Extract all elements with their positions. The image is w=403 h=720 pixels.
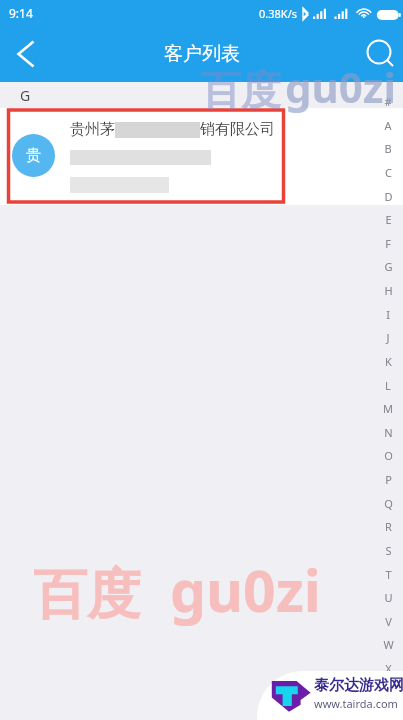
button[interactable]: O (379, 444, 397, 466)
staticText: F (385, 236, 391, 251)
button[interactable]: S (379, 539, 397, 561)
button[interactable]: G (379, 255, 397, 277)
staticText: 泰尔达游戏网 (314, 676, 403, 695)
staticText: # (384, 94, 392, 109)
staticText: B (384, 141, 392, 156)
staticText: N (384, 425, 393, 440)
button[interactable]: C (379, 161, 397, 183)
button[interactable]: D (379, 185, 397, 207)
staticText: 百度 (33, 561, 141, 629)
staticText: L (385, 378, 391, 393)
button[interactable]: B (379, 137, 397, 159)
staticText: E (385, 212, 392, 227)
staticText: gu0zi (170, 551, 321, 629)
staticText: 贵州茅 (70, 120, 115, 139)
staticText: G (384, 259, 393, 274)
staticText: V (385, 614, 392, 629)
staticText: 9:14 (9, 5, 33, 21)
staticText: H (384, 283, 393, 298)
staticText: 客户列表 (164, 42, 240, 66)
staticText: I (386, 307, 390, 322)
staticText: X (385, 661, 392, 676)
staticText: 百度 (201, 65, 281, 115)
button[interactable]: Back (0, 28, 52, 80)
staticText: gu0zi (285, 58, 397, 115)
staticText: 销有限公司 (200, 120, 275, 139)
button[interactable]: N (379, 421, 397, 443)
button[interactable]: J (379, 326, 397, 348)
button[interactable]: W (379, 633, 397, 655)
staticText: D (384, 189, 393, 204)
button[interactable]: R (379, 515, 397, 537)
staticText: W (383, 637, 394, 652)
button[interactable]: E (379, 208, 397, 230)
staticText: 贵 (26, 146, 41, 165)
button[interactable]: X (379, 657, 397, 679)
button[interactable]: H (379, 279, 397, 301)
button[interactable]: F (379, 232, 397, 254)
staticText: O (384, 448, 393, 463)
button[interactable]: I (379, 303, 397, 325)
button[interactable]: M (379, 397, 397, 419)
staticText: A (384, 118, 392, 133)
staticText: G (20, 86, 31, 105)
staticText: T (385, 567, 392, 582)
staticText: C (385, 165, 392, 180)
staticText: J (386, 330, 390, 345)
staticText: K (385, 354, 392, 369)
button[interactable]: Search (351, 28, 403, 80)
staticText: M (383, 401, 393, 416)
staticText: U (384, 590, 393, 605)
staticText: P (385, 472, 392, 487)
button[interactable]: L (379, 374, 397, 396)
button[interactable]: # (379, 90, 397, 112)
button[interactable]: V (379, 610, 397, 632)
staticText: Q (384, 496, 393, 511)
button[interactable]: U (379, 586, 397, 608)
button[interactable]: 贵 (0, 108, 403, 205)
staticText: www.tairda.com (314, 696, 398, 711)
button[interactable]: T (379, 563, 397, 585)
staticText: S (385, 543, 392, 558)
button[interactable]: Q (379, 492, 397, 514)
staticText: 0.38K/s (259, 6, 297, 21)
button[interactable]: P (379, 468, 397, 490)
button[interactable]: A (379, 114, 397, 136)
button[interactable]: K (379, 350, 397, 372)
staticText: R (385, 519, 392, 534)
